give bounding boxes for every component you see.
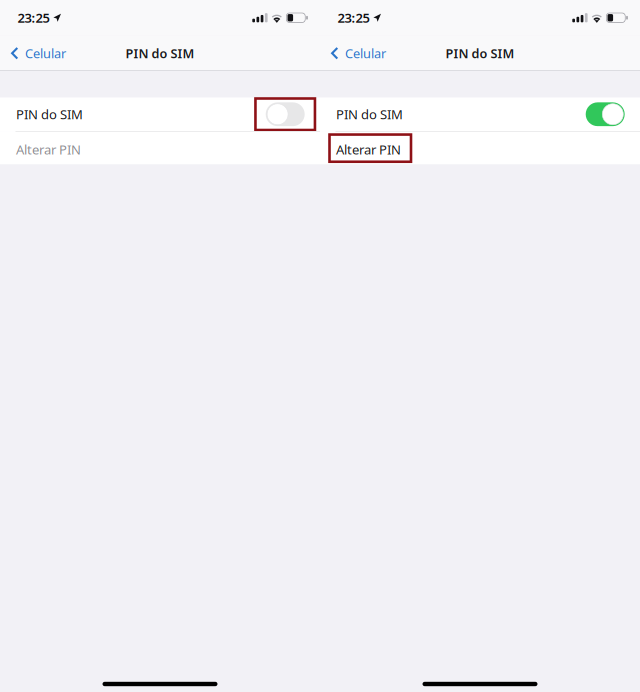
staticText: Alterar PIN [336, 141, 401, 158]
button[interactable]: Alterar PIN [0, 132, 320, 164]
button[interactable]: Celular [320, 35, 396, 71]
staticText: PIN do SIM [16, 105, 83, 123]
button[interactable]: PIN do SIM [575, 97, 635, 131]
staticText: 23:25 [337, 9, 369, 27]
staticText: PIN do SIM [336, 105, 403, 123]
staticText: Celular [345, 44, 386, 62]
button[interactable]: Alterar PIN [320, 132, 640, 164]
staticText: 23:25 [17, 9, 49, 27]
button[interactable]: PIN do SIM [255, 97, 315, 131]
staticText: PIN do SIM [125, 45, 194, 62]
button[interactable]: Celular [0, 35, 76, 71]
staticText: PIN do SIM [445, 45, 514, 62]
staticText: Celular [25, 44, 66, 62]
staticText: Alterar PIN [16, 141, 81, 158]
